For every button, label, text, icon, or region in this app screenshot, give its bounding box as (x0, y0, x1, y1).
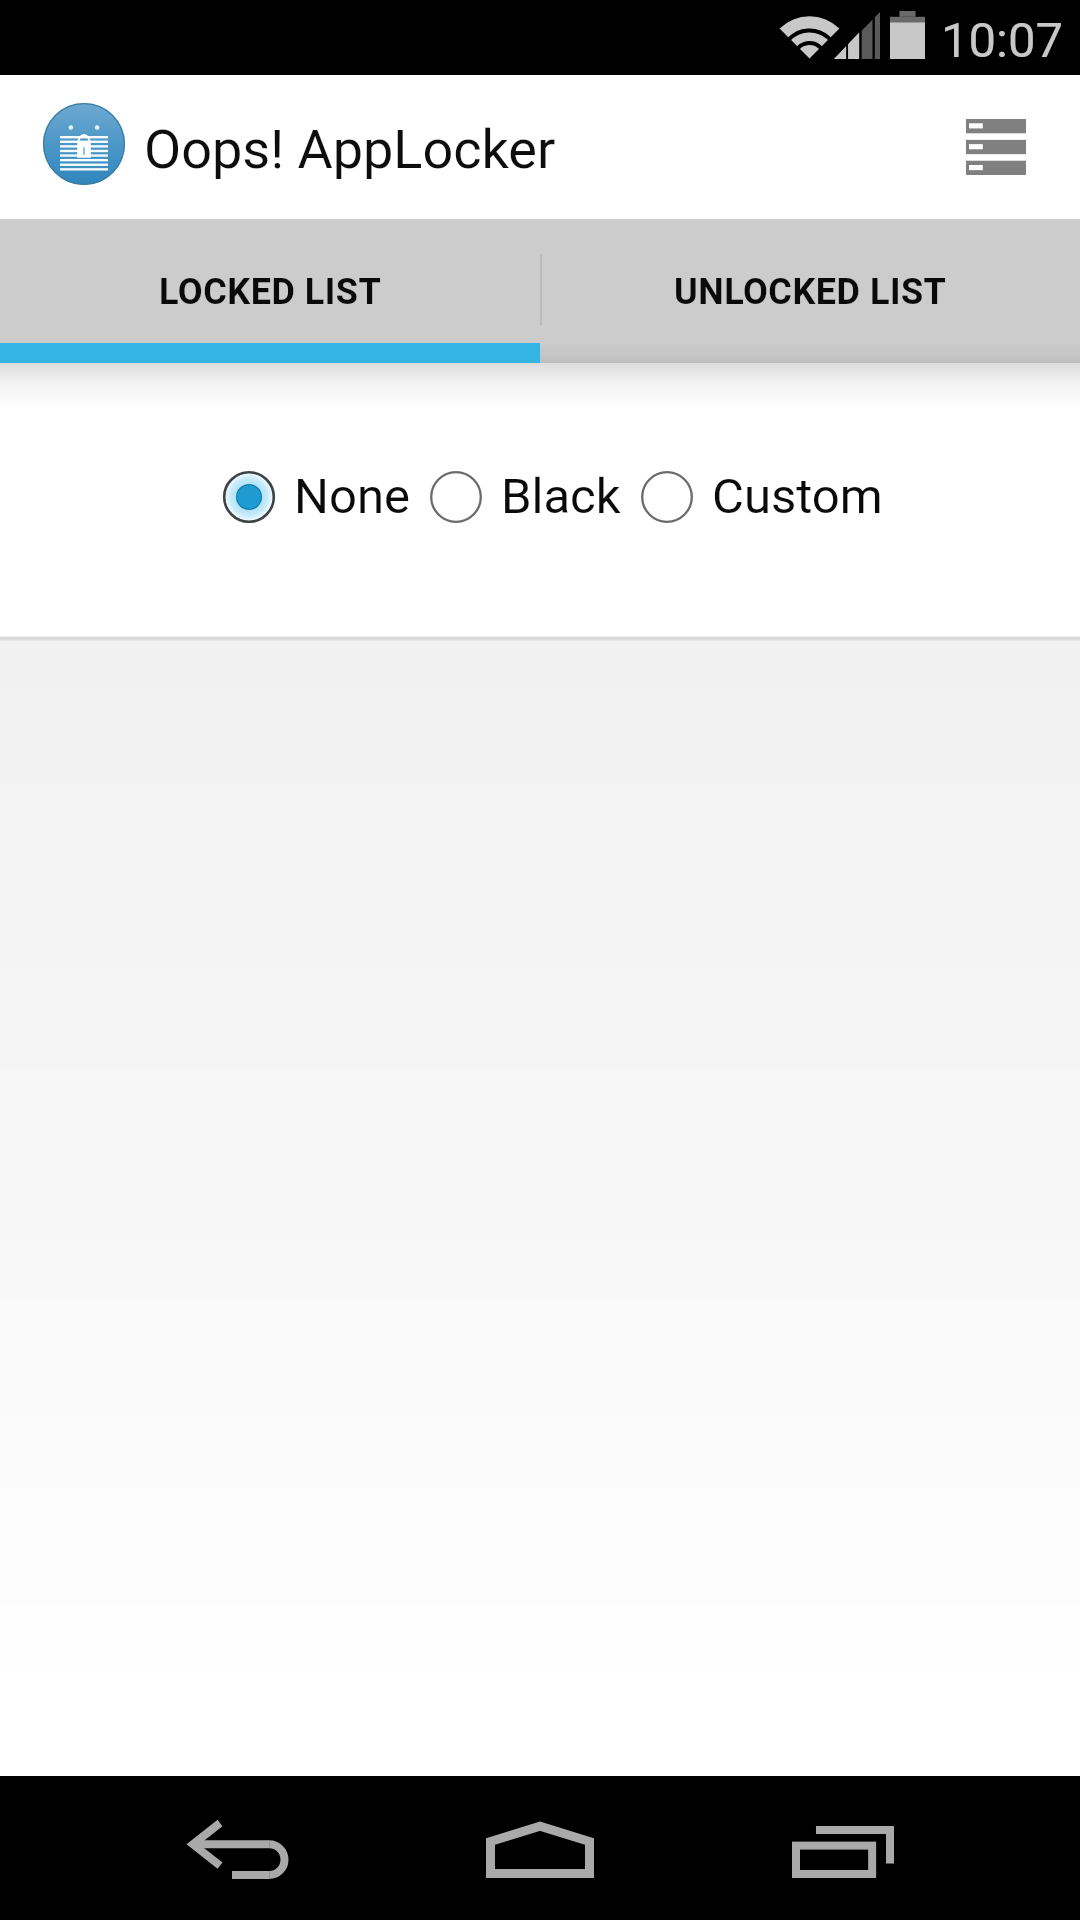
staticText: 10:07 (941, 12, 1064, 69)
button[interactable]: Custom (641, 468, 883, 525)
staticText: UNLOCKED LIST (674, 271, 947, 313)
button[interactable]: None (223, 468, 410, 525)
staticText: None (294, 468, 410, 525)
staticText: Black (501, 468, 621, 525)
button[interactable]: Home (420, 1776, 660, 1920)
button[interactable]: LOCKED LIST (0, 219, 540, 343)
staticText: Custom (712, 468, 883, 525)
button[interactable]: Recents (723, 1776, 963, 1920)
button[interactable]: Black (430, 468, 621, 525)
staticText: LOCKED LIST (159, 271, 382, 313)
button[interactable]: Oops! AppLocker (20, 75, 580, 219)
staticText: Oops! AppLocker (144, 118, 556, 181)
button[interactable]: UNLOCKED LIST (540, 219, 1080, 343)
button[interactable]: Back (120, 1776, 360, 1920)
button[interactable]: Menu (936, 104, 1056, 190)
